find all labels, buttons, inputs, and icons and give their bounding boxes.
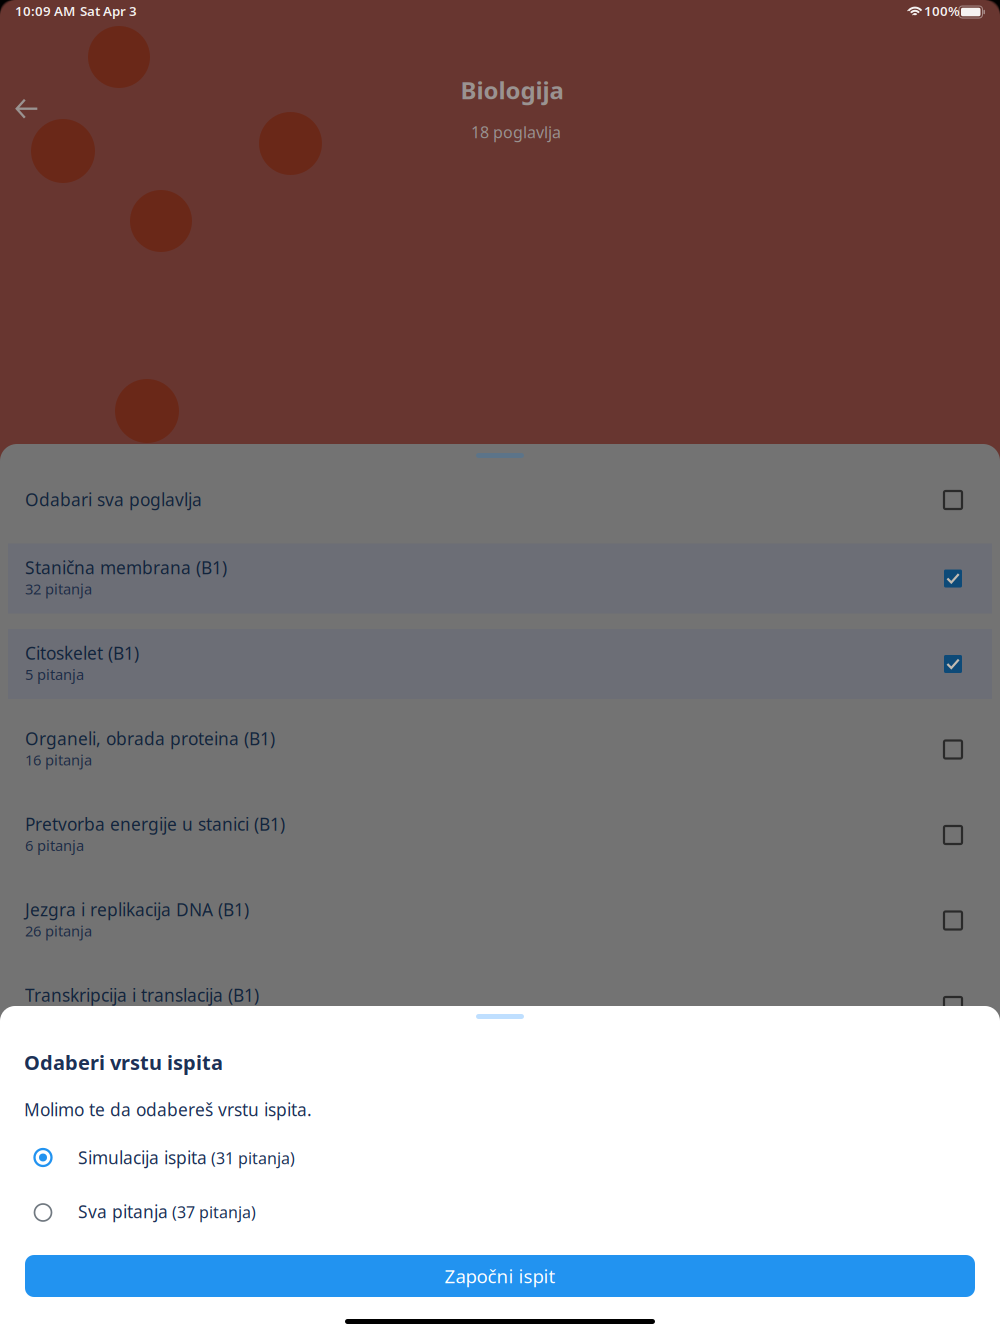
button[interactable]: Citoskelet (B1) xyxy=(0,629,1000,699)
button[interactable]: Transkripcija i translacija (B1) xyxy=(0,971,1000,1041)
staticText: Sat Apr 3 xyxy=(80,2,137,20)
staticText: Pretvorba energije u stanici (B1) xyxy=(25,812,285,835)
staticText: Započni ispit xyxy=(444,1264,555,1288)
staticText: Jezgra i replikacija DNA (B1) xyxy=(25,898,249,921)
button[interactable]: Organeli, obrada proteina (B1) xyxy=(0,714,1000,784)
button[interactable]: Sva pitanja xyxy=(0,1187,1000,1237)
button[interactable]: Jezgra i replikacija DNA (B1) xyxy=(0,885,1000,955)
staticText: Simulacija ispita xyxy=(78,1146,207,1169)
staticText: Biologija xyxy=(460,74,563,106)
button[interactable]: Pretvorba energije u stanici (B1) xyxy=(0,800,1000,870)
staticText: Odabari sva poglavlja xyxy=(25,488,202,511)
button[interactable]: Simulacija ispita xyxy=(0,1133,1000,1183)
button[interactable]: Započni ispit xyxy=(25,1255,975,1297)
staticText: Stanična membrana (B1) xyxy=(25,556,227,579)
staticText: 6 pitanja xyxy=(25,835,84,855)
staticText: Molimo te da odabereš vrstu ispita. xyxy=(24,1098,312,1121)
button[interactable]: Stanična membrana (B1) xyxy=(0,543,1000,613)
staticText: (37 pitanja) xyxy=(172,1201,256,1223)
staticText: 26 pitanja xyxy=(25,921,92,940)
button[interactable]: Odabari sva poglavlja xyxy=(0,449,1000,544)
button[interactable]: Back xyxy=(5,87,49,131)
staticText: 5 pitanja xyxy=(25,664,84,684)
staticText: Odaberi vrstu ispita xyxy=(24,1049,223,1076)
staticText: 16 pitanja xyxy=(25,750,92,769)
staticText: Organeli, obrada proteina (B1) xyxy=(25,727,275,750)
staticText: Transkripcija i translacija (B1) xyxy=(25,983,259,1006)
staticText: 10:09 AM xyxy=(15,2,75,20)
staticText: (31 pitanja) xyxy=(211,1147,295,1169)
staticText: 100% xyxy=(924,2,960,20)
staticText: Sva pitanja xyxy=(78,1200,168,1223)
staticText: 32 pitanja xyxy=(25,579,92,598)
staticText: 18 poglavlja xyxy=(471,121,561,143)
staticText: Citoskelet (B1) xyxy=(25,641,139,664)
